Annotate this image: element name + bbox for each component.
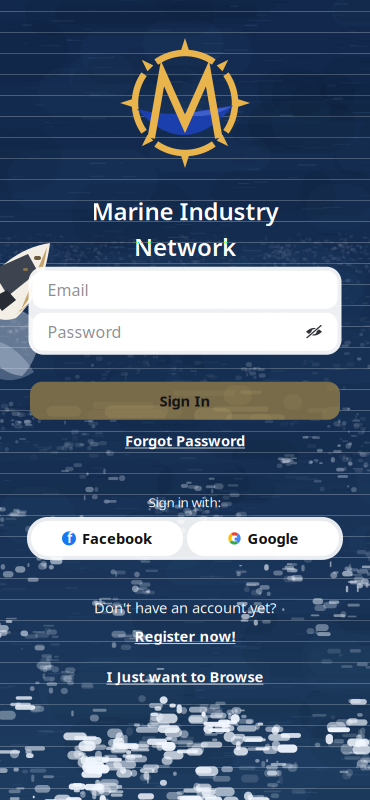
staticText: Password <box>47 321 121 342</box>
button[interactable]: Forgot Password <box>115 428 255 453</box>
staticText: Forgot Password <box>125 431 245 450</box>
staticText: Sign in with: <box>148 493 221 511</box>
button[interactable]: Register now! <box>124 623 245 649</box>
staticText: Email <box>47 279 88 300</box>
staticText: I Just want to Browse <box>106 667 263 686</box>
staticText: Sign In <box>159 391 210 410</box>
button[interactable]: Sign In <box>30 382 340 420</box>
button[interactable]: f <box>31 521 183 556</box>
button[interactable]: I Just want to Browse <box>96 664 273 689</box>
staticText: Facebook <box>82 529 152 548</box>
button[interactable]: Google <box>187 521 339 556</box>
staticText: Network <box>134 231 236 263</box>
staticText: Don't have an account yet? <box>94 598 276 617</box>
staticText: f <box>67 529 72 547</box>
staticText: Marine Industry <box>91 195 278 227</box>
staticText: Register now! <box>134 626 235 646</box>
staticText: Google <box>247 529 298 548</box>
